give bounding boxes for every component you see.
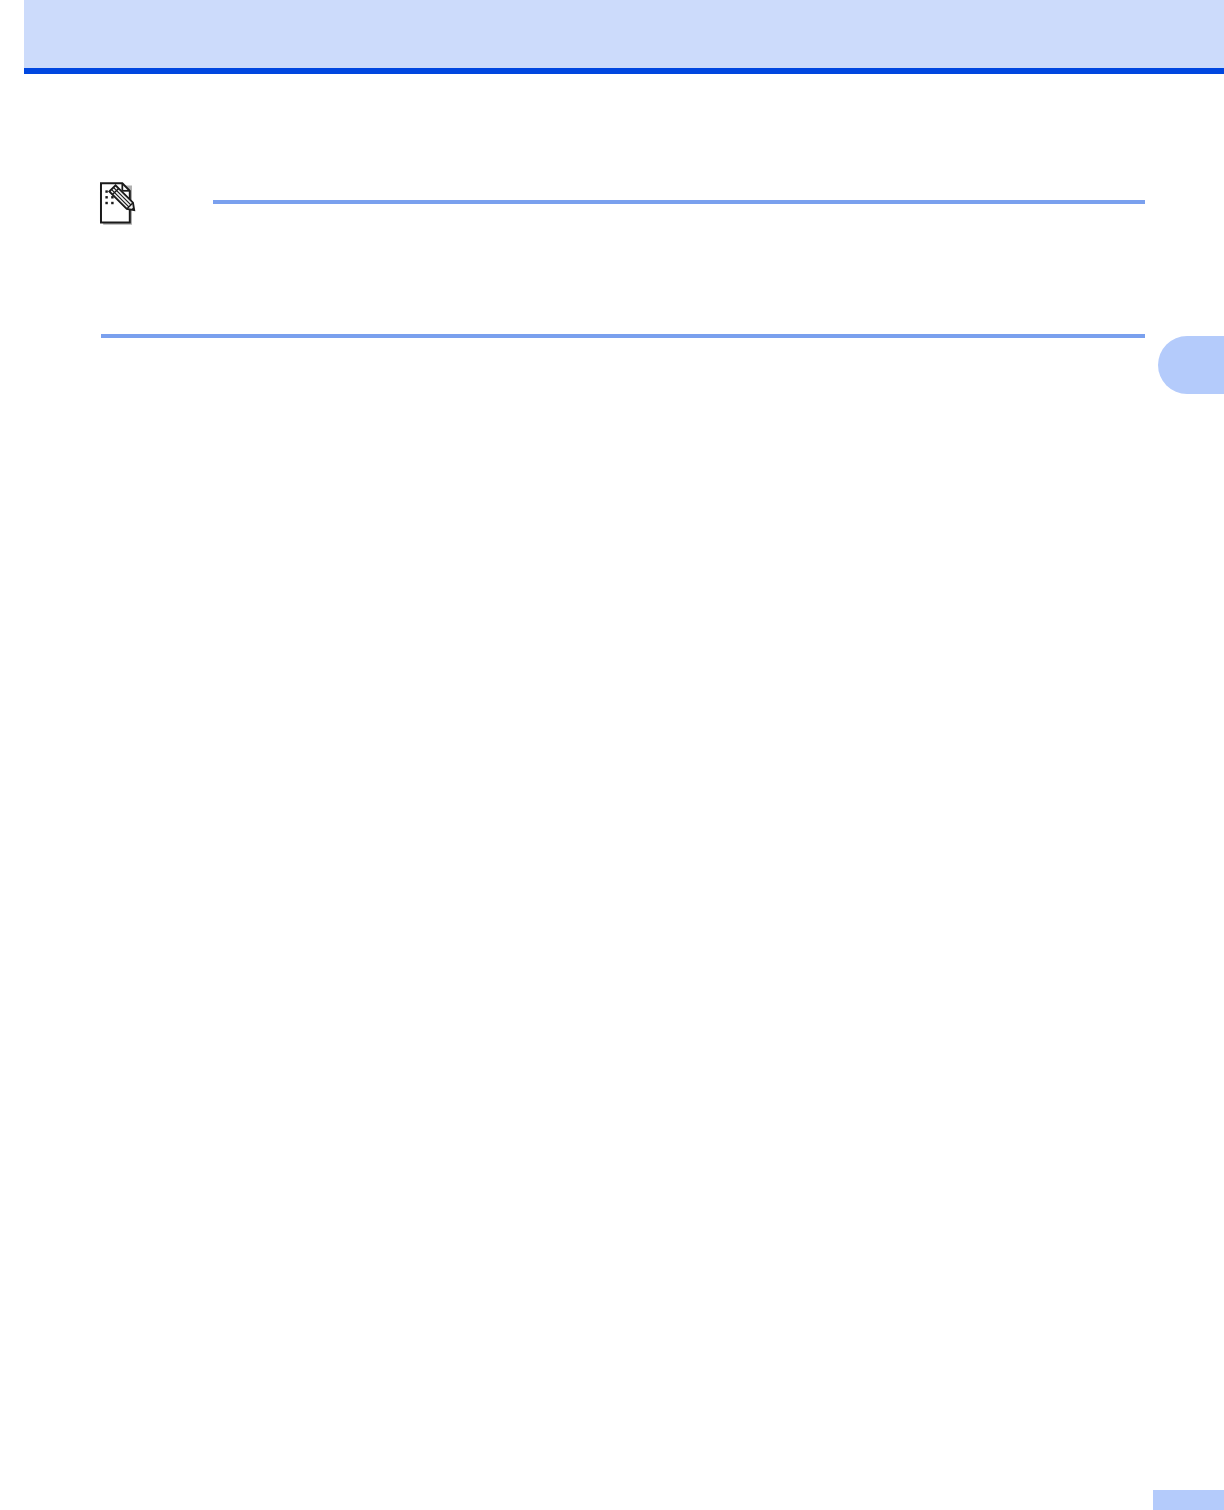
- button[interactable]: Chapter tab: [1158, 336, 1224, 394]
- button[interactable]: Note: [99, 182, 143, 226]
